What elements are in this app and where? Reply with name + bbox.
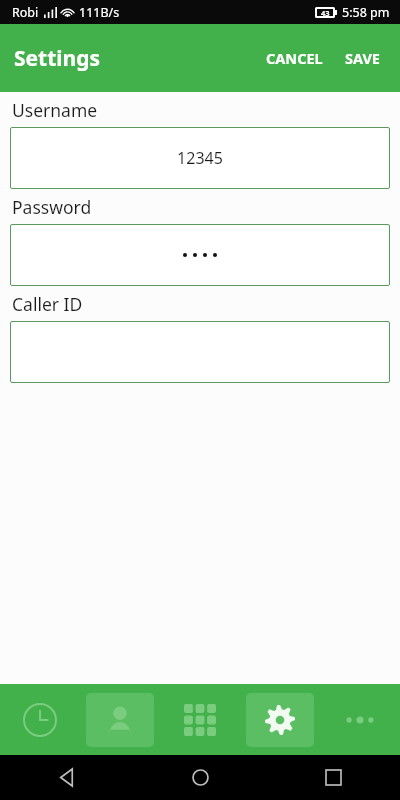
button[interactable]: Home bbox=[134, 755, 267, 800]
staticText: 5:58 pm bbox=[342, 4, 390, 21]
staticText: Settings bbox=[14, 44, 101, 73]
staticText: 43 bbox=[321, 8, 330, 18]
button[interactable]: More options bbox=[320, 684, 400, 755]
button[interactable]: SAVE bbox=[333, 38, 400, 78]
button[interactable]: CANCEL bbox=[256, 38, 333, 78]
button[interactable]: 12345 bbox=[10, 127, 390, 189]
staticText: 12345 bbox=[177, 147, 223, 169]
staticText: Username bbox=[12, 98, 98, 122]
staticText: CANCEL bbox=[266, 48, 323, 68]
button[interactable]: Contacts bbox=[80, 684, 160, 755]
button[interactable]: Back bbox=[0, 755, 134, 800]
button[interactable]: Recents bbox=[267, 755, 400, 800]
button[interactable]: Dialpad bbox=[160, 684, 240, 755]
button[interactable] bbox=[10, 224, 390, 286]
button[interactable]: Settings bbox=[240, 684, 320, 755]
button[interactable] bbox=[10, 321, 390, 383]
button[interactable]: Recent calls bbox=[0, 684, 80, 755]
staticText: Robi bbox=[12, 4, 39, 21]
staticText: Password bbox=[12, 195, 92, 219]
staticText: Caller ID bbox=[12, 292, 83, 316]
staticText: SAVE bbox=[345, 48, 380, 68]
staticText: 111B/s bbox=[79, 4, 120, 21]
